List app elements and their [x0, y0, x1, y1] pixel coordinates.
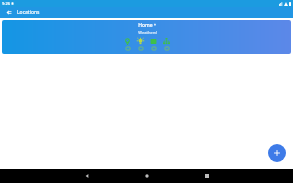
button[interactable]: Recents: [177, 169, 237, 183]
button[interactable]: Home: [117, 169, 177, 183]
button[interactable]: Locations: [123, 38, 132, 50]
staticText: Locations: [17, 9, 40, 16]
button[interactable]: Devices: [162, 38, 171, 50]
staticText: Home •: [138, 22, 156, 29]
button[interactable]: Lights: [136, 38, 145, 50]
button[interactable]: Back: [57, 169, 117, 183]
staticText: 9:26: [2, 1, 10, 6]
staticText: Weatherd: [138, 30, 157, 35]
button[interactable]: Add location: [268, 144, 286, 162]
button[interactable]: Home •: [2, 20, 291, 54]
button[interactable]: Scenes: [149, 38, 158, 50]
button[interactable]: Back: [4, 8, 13, 17]
